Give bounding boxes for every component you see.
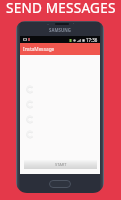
staticText: START (55, 162, 67, 167)
button[interactable]: Home (49, 180, 71, 188)
staticText: InstaMessage (23, 46, 55, 53)
staticText: 17:36 (86, 37, 98, 43)
staticText: SEND MESSAGES (6, 0, 116, 13)
staticText: SAMSUNG (49, 27, 71, 33)
button[interactable]: START (24, 160, 97, 169)
